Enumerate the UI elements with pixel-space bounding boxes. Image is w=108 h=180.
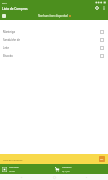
button[interactable]: Biscoito [0,52,108,60]
button[interactable]: Lista de Compras [0,154,108,164]
button[interactable]: Compras [2,166,19,173]
staticText: Sanduíche de [3,38,20,42]
button[interactable]: Install app [99,156,105,162]
button[interactable]: Search [93,4,101,12]
staticText: Lista de Compras [2,7,28,11]
staticText: R$ 0,00 [62,170,70,173]
staticText: Biscoito [3,54,13,58]
staticText: Grátis [9,170,16,173]
staticText: 9:41 [2,1,7,4]
staticText: Leite [3,46,10,50]
button[interactable]: Cart [55,166,72,173]
button[interactable]: More options [101,5,107,11]
button[interactable]: Open list [2,14,6,18]
staticText: Manteiga [3,30,15,34]
button[interactable]: Sanduíche de [0,36,108,44]
staticText: Carrinho [62,166,72,169]
button[interactable]: Manteiga [0,28,108,36]
other: Cart [55,167,60,172]
staticText: Nenhum item disponível [38,14,68,18]
staticText: Lista de Compras [3,158,23,161]
button[interactable]: Leite [0,44,108,52]
staticText: GO [100,158,104,161]
staticText: Compras [9,166,19,169]
